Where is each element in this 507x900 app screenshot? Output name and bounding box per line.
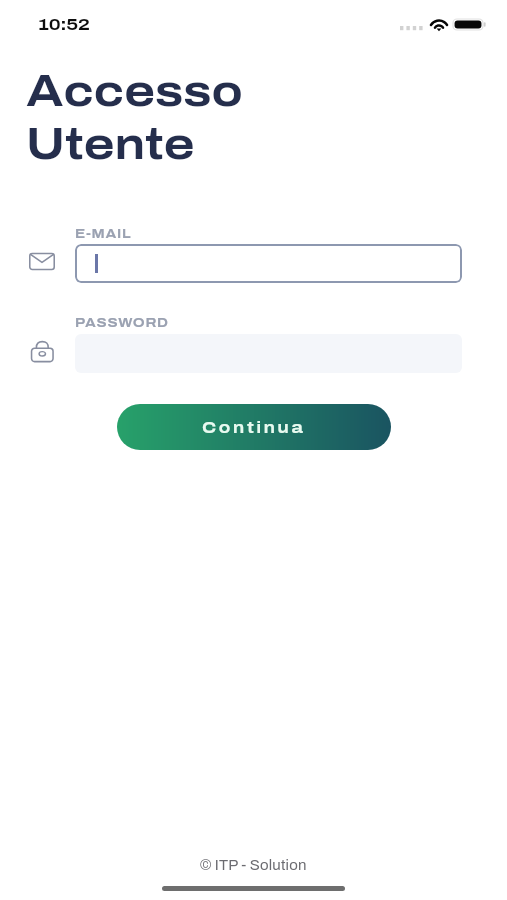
other: Wi-Fi [429,17,449,31]
button[interactable] [75,244,462,283]
button[interactable]: Continua [117,404,391,450]
staticText: 10:52 [38,16,90,34]
staticText: E-MAIL [75,227,132,241]
staticText: Accesso Utente [26,68,243,168]
other: Battery [453,19,489,30]
other: Cellular signal [400,26,424,32]
other: Password [29,339,55,368]
staticText: © ITP - Solution [200,857,307,873]
staticText: PASSWORD [75,316,169,330]
staticText: Continua [202,419,306,436]
other: Email [29,249,55,278]
